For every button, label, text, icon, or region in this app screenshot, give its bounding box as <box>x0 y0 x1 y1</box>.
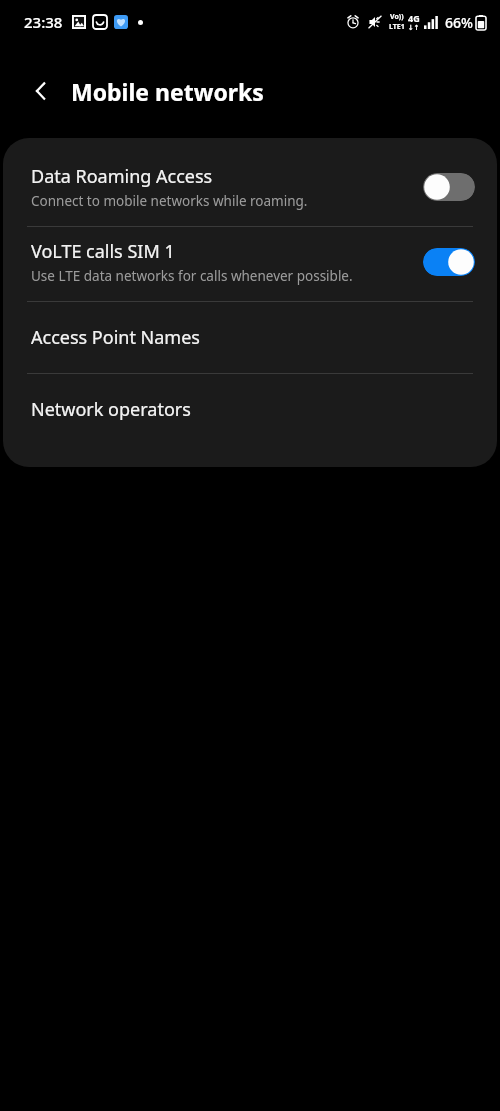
staticText: VoLTE calls SIM 1 <box>31 239 175 264</box>
button[interactable]: Off <box>423 173 475 201</box>
button[interactable]: Back <box>18 68 64 114</box>
staticText: 23:38 <box>24 12 63 32</box>
button[interactable]: Data Roaming Access <box>3 152 497 226</box>
staticText: Mobile networks <box>71 76 264 107</box>
button[interactable]: VoLTE calls SIM 1 <box>3 227 497 301</box>
staticText: ↓↑ <box>408 24 420 32</box>
staticText: Vo)) <box>390 12 404 22</box>
button[interactable]: Access Point Names <box>3 302 497 373</box>
staticText: Use LTE data networks for calls whenever… <box>31 267 353 285</box>
staticText: Network operators <box>31 397 191 422</box>
staticText: Data Roaming Access <box>31 164 213 189</box>
staticText: 66% <box>445 13 473 32</box>
staticText: Access Point Names <box>31 325 200 350</box>
button[interactable]: On <box>423 248 475 276</box>
button[interactable]: Network operators <box>3 374 497 445</box>
staticText: LTE1 <box>389 22 405 32</box>
staticText: Connect to mobile networks while roaming… <box>31 192 308 210</box>
staticText: 4G <box>408 12 420 24</box>
